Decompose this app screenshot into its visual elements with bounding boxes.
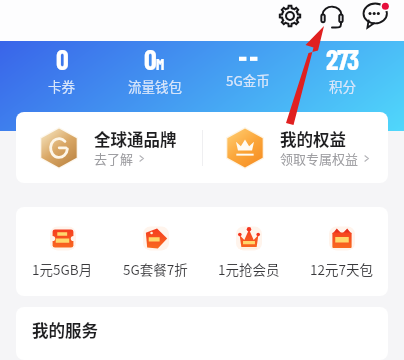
staticText: 0 bbox=[144, 42, 156, 76]
staticText: 去了解 bbox=[94, 149, 134, 168]
staticText: 1元5GB月 bbox=[32, 259, 93, 279]
staticText: M bbox=[156, 55, 165, 73]
button[interactable]: 273 bbox=[295, 41, 389, 96]
staticText: 全球通品牌 bbox=[94, 127, 177, 151]
staticText: 我的服务 bbox=[32, 318, 98, 342]
staticText: 流量钱包 bbox=[128, 76, 182, 96]
staticText: 积分 bbox=[329, 76, 356, 96]
staticText: 0 bbox=[56, 42, 68, 76]
staticText: 5G金币 bbox=[226, 70, 270, 90]
staticText: 273 bbox=[326, 42, 358, 76]
button[interactable]: Customer service bbox=[315, 0, 349, 33]
button[interactable]: 1元抢会员 bbox=[202, 207, 295, 296]
staticText: 领取专属权益 bbox=[280, 149, 359, 168]
button[interactable]: Messages bbox=[359, 0, 393, 32]
staticText: 1元抢会员 bbox=[218, 259, 280, 279]
button[interactable]: 5G金币 bbox=[201, 41, 295, 90]
button[interactable]: 0 bbox=[108, 41, 201, 96]
staticText: 12元7天包 bbox=[310, 259, 373, 279]
button[interactable]: Settings bbox=[273, 0, 307, 33]
staticText: 5G套餐7折 bbox=[123, 259, 188, 279]
button[interactable]: 0 bbox=[15, 41, 108, 96]
button[interactable]: 12元7天包 bbox=[295, 207, 388, 296]
button[interactable]: 我的权益 bbox=[202, 112, 388, 183]
button[interactable]: 全球通品牌 bbox=[16, 112, 202, 183]
button[interactable]: 1元5GB月 bbox=[16, 207, 109, 296]
staticText: 卡券 bbox=[48, 76, 75, 96]
button[interactable]: 5G套餐7折 bbox=[109, 207, 202, 296]
staticText: 我的权益 bbox=[280, 127, 346, 151]
